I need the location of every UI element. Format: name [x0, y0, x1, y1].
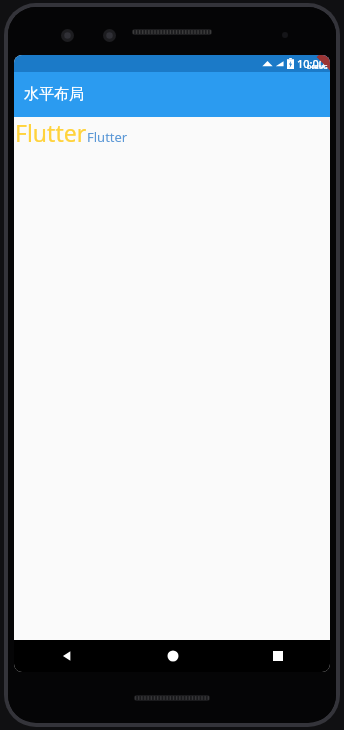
- button[interactable]: Recent apps: [225, 640, 330, 672]
- staticText: DEBUG: [307, 63, 328, 71]
- staticText: 水平布局: [24, 85, 84, 104]
- button[interactable]: Home: [120, 640, 225, 672]
- button[interactable]: Back: [14, 640, 120, 672]
- staticText: 10:00: [297, 56, 326, 71]
- staticText: Flutter: [15, 117, 87, 148]
- staticText: Flutter: [87, 128, 128, 146]
- button[interactable]: 水平布局: [14, 72, 330, 117]
